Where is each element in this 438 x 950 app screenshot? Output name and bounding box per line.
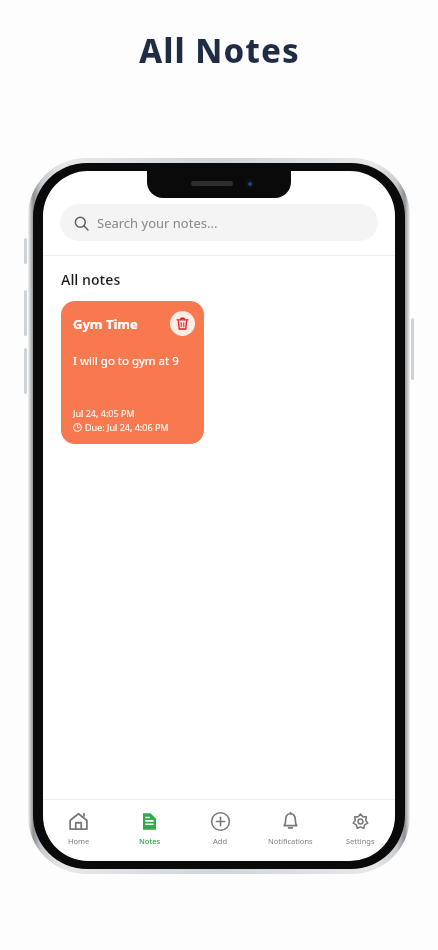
staticText: Add (213, 836, 228, 846)
staticText: All Notes (139, 28, 300, 73)
staticText: Gym Time (73, 315, 138, 333)
staticText: Home (68, 836, 90, 846)
staticText: Notes (139, 836, 161, 846)
button[interactable]: Add (185, 809, 255, 848)
button[interactable]: Notes (114, 809, 185, 848)
staticText: All notes (61, 270, 121, 289)
staticText: Settings (346, 836, 375, 846)
staticText: I will go to gym at 9 (73, 353, 179, 369)
button[interactable]: Notifications (255, 809, 325, 848)
button[interactable]: Settings (325, 809, 395, 848)
button[interactable]: Delete note (170, 311, 195, 336)
staticText: Notifications (268, 836, 313, 846)
staticText: Due: Jul 24, 4:06 PM (85, 421, 169, 433)
button[interactable]: Home (43, 809, 114, 848)
staticText: Search your notes... (97, 214, 218, 232)
button[interactable]: Gym Time (61, 301, 204, 444)
button[interactable]: Search your notes... (60, 204, 378, 241)
staticText: Jul 24, 4:05 PM (73, 407, 135, 419)
